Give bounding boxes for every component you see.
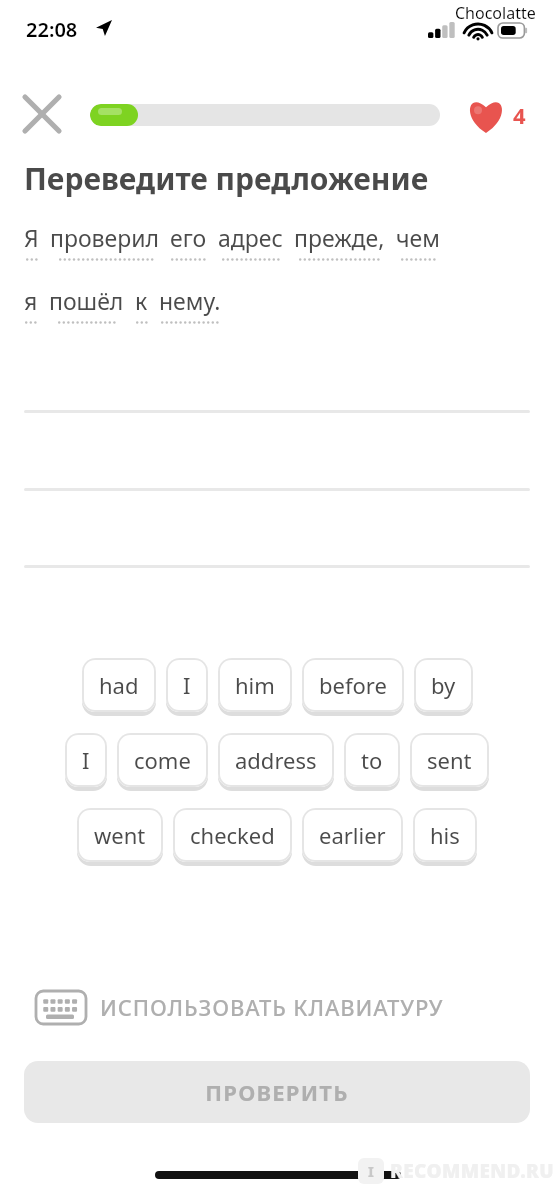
staticText: RECOMMEND.RU	[390, 1158, 554, 1184]
button[interactable]: Close	[14, 86, 70, 142]
staticText: Я	[24, 222, 39, 253]
staticText: ИСПОЛЬЗОВАТЬ КЛАВИАТУРУ	[100, 992, 444, 1022]
button[interactable]: by	[414, 658, 473, 716]
staticText: went	[94, 820, 146, 850]
staticText: his	[430, 820, 460, 850]
staticText: чем	[396, 222, 440, 253]
button[interactable]: Lives	[460, 90, 512, 142]
button[interactable]: ИСПОЛЬЗОВАТЬ КЛАВИАТУРУ	[30, 980, 450, 1034]
button[interactable]: I	[65, 733, 107, 791]
staticText: пошёл	[49, 285, 124, 316]
button[interactable]: I	[166, 658, 208, 716]
staticText: I	[183, 670, 191, 700]
button[interactable]: checked	[173, 808, 292, 866]
staticText: by	[431, 670, 456, 700]
staticText: адрес	[218, 222, 283, 253]
button[interactable]: before	[302, 658, 404, 716]
staticText: Chocolatte	[455, 2, 536, 24]
staticText: checked	[190, 820, 275, 850]
button[interactable]: come	[117, 733, 208, 791]
staticText: him	[235, 670, 275, 700]
staticText: проверил	[50, 222, 159, 253]
staticText: before	[319, 670, 387, 700]
staticText: я	[24, 285, 38, 316]
button[interactable]: had	[82, 658, 156, 716]
staticText: нему.	[159, 285, 221, 316]
staticText: 22:08	[26, 16, 78, 43]
staticText: come	[134, 745, 191, 775]
staticText: had	[99, 670, 139, 700]
staticText: address	[235, 745, 317, 775]
button[interactable]: to	[344, 733, 400, 791]
button[interactable]: went	[77, 808, 163, 866]
button[interactable]: ПРОВЕРИТЬ	[24, 1061, 530, 1123]
staticText: Переведите предложение	[24, 158, 429, 199]
button[interactable]: him	[218, 658, 292, 716]
staticText: прежде,	[294, 222, 385, 253]
staticText: to	[361, 745, 383, 775]
staticText: sent	[427, 745, 472, 775]
button[interactable]: his	[413, 808, 477, 866]
staticText: 4	[513, 100, 526, 130]
button[interactable]: earlier	[302, 808, 403, 866]
button[interactable]: address	[218, 733, 334, 791]
staticText: I	[82, 745, 90, 775]
staticText: его	[170, 222, 207, 253]
staticText: I	[368, 1161, 374, 1181]
staticText: к	[135, 285, 148, 316]
staticText: earlier	[319, 820, 386, 850]
staticText: ПРОВЕРИТЬ	[205, 1077, 349, 1107]
button[interactable]: sent	[410, 733, 489, 791]
